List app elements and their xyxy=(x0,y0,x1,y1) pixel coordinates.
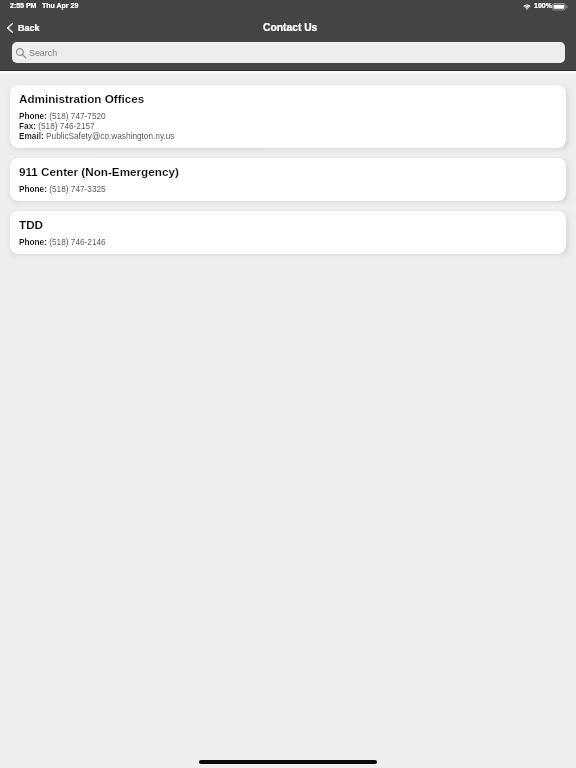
staticText: 100% xyxy=(534,2,552,10)
staticText: Back xyxy=(18,23,40,33)
staticText: Administration Offices xyxy=(19,92,145,105)
staticText: Contact Us xyxy=(263,22,318,34)
button[interactable]: Search xyxy=(12,42,565,63)
staticText: Phone: (518) 746-2146 xyxy=(19,238,106,247)
staticText: Thu Apr 29 xyxy=(42,2,79,10)
staticText: Phone: (518) 747-3325 xyxy=(19,185,106,194)
other: Wi-Fi xyxy=(522,1,532,10)
button[interactable]: Administration Offices xyxy=(10,85,566,148)
button[interactable]: TDD xyxy=(10,211,566,254)
staticText: TDD xyxy=(19,218,44,231)
staticText: Phone: (518) 747-7520 Fax: (518) 746-215… xyxy=(19,112,175,141)
button[interactable]: Back xyxy=(0,20,50,36)
button[interactable]: 911 Center (Non-Emergency) xyxy=(10,158,566,201)
other: Battery xyxy=(552,3,567,11)
staticText: Search xyxy=(29,48,58,58)
staticText: 2:55 PM xyxy=(10,2,37,10)
staticText: 911 Center (Non-Emergency) xyxy=(19,165,179,178)
